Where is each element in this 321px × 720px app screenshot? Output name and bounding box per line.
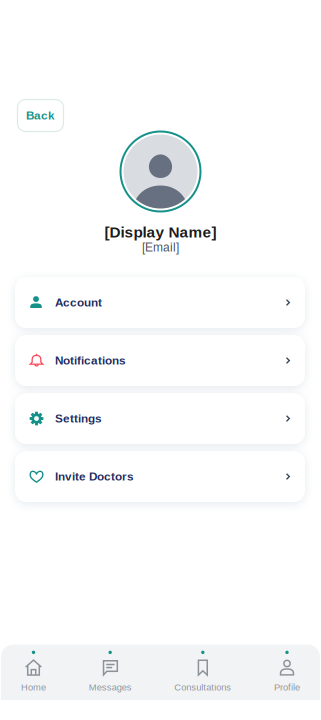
button[interactable]: Home (21, 651, 46, 692)
staticText: Profile (274, 682, 300, 692)
staticText: [Display Name] (104, 223, 216, 241)
staticText: Home (21, 682, 46, 692)
button[interactable]: Consultations (174, 651, 231, 692)
button[interactable]: Profile (274, 651, 300, 692)
staticText: Settings (55, 412, 102, 425)
button[interactable]: Back (17, 99, 63, 131)
staticText: Back (26, 109, 55, 122)
staticText: [Email] (142, 241, 179, 254)
staticText: Messages (89, 682, 132, 692)
staticText: Consultations (174, 682, 231, 692)
button[interactable]: Messages (89, 651, 132, 692)
button[interactable]: Settings (15, 393, 305, 444)
button[interactable]: Notifications (15, 335, 305, 386)
staticText: Notifications (55, 354, 126, 367)
button[interactable]: Invite Doctors (15, 451, 305, 502)
staticText: Account (55, 296, 102, 309)
button[interactable]: Account (15, 277, 305, 328)
staticText: Invite Doctors (55, 470, 134, 483)
